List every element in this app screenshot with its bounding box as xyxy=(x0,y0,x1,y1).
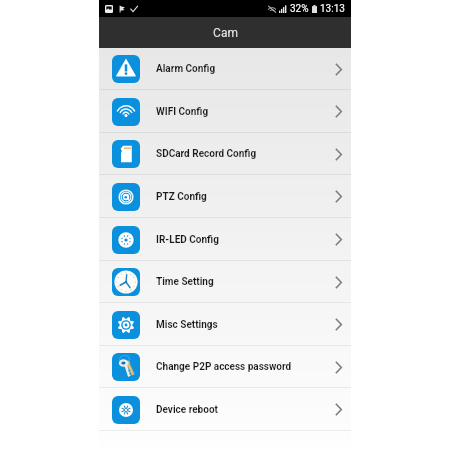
staticText: PTZ Config xyxy=(156,191,207,203)
button[interactable]: IR-LED Config xyxy=(99,218,351,261)
staticText: Device reboot xyxy=(156,404,218,416)
staticText: Cam xyxy=(213,26,238,40)
staticText: 13:13 xyxy=(320,3,345,15)
button[interactable]: SDCard Record Config xyxy=(99,133,351,175)
button[interactable]: Time Setting xyxy=(99,261,351,303)
button[interactable]: WIFI Config xyxy=(99,90,351,133)
button[interactable]: Alarm Config xyxy=(99,48,351,90)
staticText: Time Setting xyxy=(156,276,214,288)
staticText: Misc Settings xyxy=(156,319,218,331)
button[interactable]: Misc Settings xyxy=(99,303,351,346)
staticText: Alarm Config xyxy=(156,63,216,75)
staticText: Change P2P access password xyxy=(156,361,292,373)
button[interactable]: Device reboot xyxy=(99,388,351,431)
button[interactable]: PTZ Config xyxy=(99,175,351,218)
staticText: WIFI Config xyxy=(156,106,209,118)
staticText: IR-LED Config xyxy=(156,234,219,246)
staticText: 32% xyxy=(290,3,309,15)
button[interactable]: Change P2P access password xyxy=(99,346,351,388)
staticText: SDCard Record Config xyxy=(156,148,257,160)
